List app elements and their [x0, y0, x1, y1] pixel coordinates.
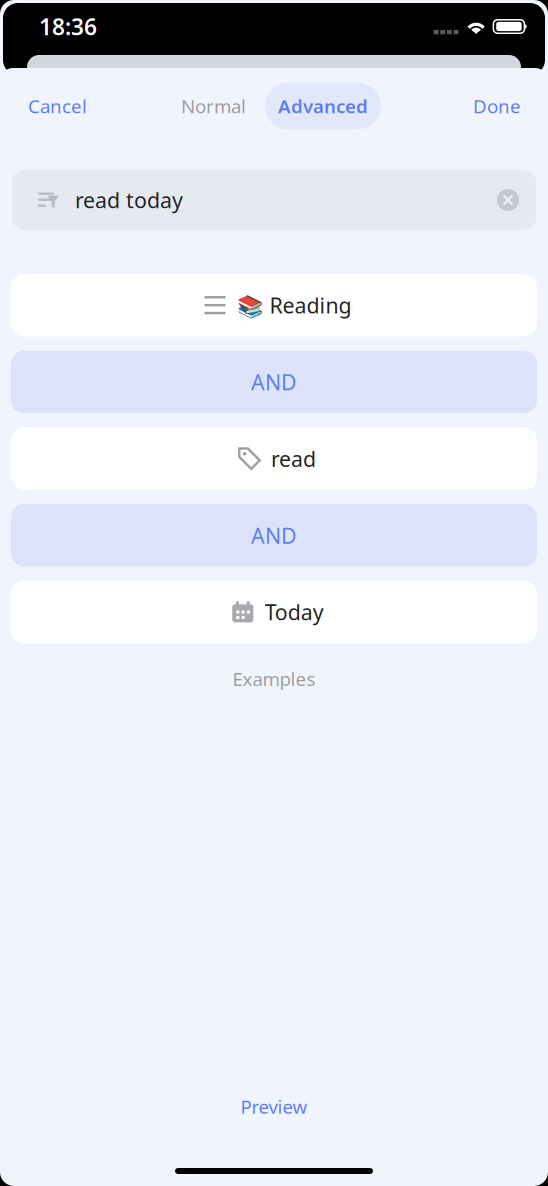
button[interactable]: 📚 Reading: [11, 274, 537, 336]
button[interactable]: Done: [457, 82, 521, 130]
button[interactable]: Cancel: [28, 82, 103, 130]
staticText: 📚 Reading: [236, 291, 351, 319]
staticText: Advanced: [278, 94, 368, 118]
button[interactable]: Normal: [167, 83, 260, 129]
staticText: read today: [75, 186, 183, 214]
button[interactable]: read: [11, 427, 537, 490]
staticText: Examples: [232, 666, 315, 691]
button[interactable]: Clear search: [497, 189, 519, 211]
staticText: Done: [473, 94, 521, 118]
staticText: Today: [265, 598, 324, 626]
staticText: Preview: [240, 1094, 307, 1119]
staticText: AND: [251, 521, 297, 549]
button[interactable]: Preview: [216, 1084, 331, 1129]
staticText: AND: [251, 368, 297, 396]
staticText: Cancel: [28, 94, 87, 118]
staticText: read: [271, 444, 316, 473]
button[interactable]: AND: [11, 504, 537, 567]
button[interactable]: Today: [11, 581, 537, 643]
staticText: Normal: [181, 94, 246, 118]
button[interactable]: Advanced: [265, 83, 381, 129]
button[interactable]: AND: [11, 351, 537, 413]
staticText: 18:36: [39, 11, 97, 41]
